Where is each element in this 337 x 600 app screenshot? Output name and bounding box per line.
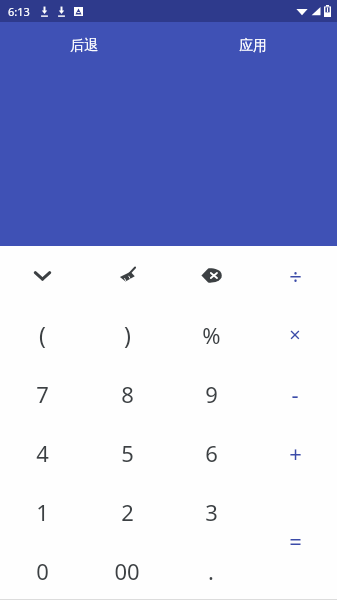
button[interactable]: Clear all bbox=[85, 246, 169, 305]
button[interactable]: ( bbox=[0, 305, 85, 364]
staticText: 9 bbox=[205, 379, 218, 409]
button[interactable]: Collapse keypad bbox=[0, 246, 85, 305]
button[interactable]: × bbox=[253, 305, 337, 364]
button[interactable]: 8 bbox=[85, 364, 169, 423]
button[interactable]: % bbox=[169, 305, 253, 364]
button[interactable]: - bbox=[253, 364, 337, 423]
staticText: . bbox=[208, 556, 214, 586]
button[interactable]: ÷ bbox=[253, 246, 337, 305]
staticText: 应用 bbox=[239, 37, 267, 55]
staticText: 6:13 bbox=[8, 4, 30, 19]
staticText: 1 bbox=[36, 497, 49, 527]
staticText: % bbox=[202, 320, 221, 350]
staticText: 3 bbox=[205, 497, 218, 527]
button[interactable]: + bbox=[253, 423, 337, 482]
button[interactable]: 9 bbox=[169, 364, 253, 423]
button[interactable]: 0 bbox=[0, 541, 85, 600]
staticText: 00 bbox=[114, 556, 140, 586]
staticText: ) bbox=[124, 319, 131, 350]
staticText: 7 bbox=[36, 379, 49, 409]
button[interactable]: 后退 bbox=[0, 28, 168, 64]
button[interactable]: 4 bbox=[0, 423, 85, 482]
staticText: 后退 bbox=[70, 37, 98, 55]
button[interactable]: 7 bbox=[0, 364, 85, 423]
button[interactable]: 应用 bbox=[168, 28, 337, 64]
button[interactable]: ) bbox=[85, 305, 169, 364]
staticText: 4 bbox=[36, 438, 49, 468]
button[interactable]: . bbox=[169, 541, 253, 600]
button[interactable]: 1 bbox=[0, 482, 85, 541]
staticText: ÷ bbox=[289, 261, 302, 291]
button[interactable]: Backspace bbox=[169, 246, 253, 305]
staticText: 6 bbox=[205, 438, 218, 468]
button[interactable]: 2 bbox=[85, 482, 169, 541]
staticText: = bbox=[289, 526, 302, 556]
staticText: × bbox=[289, 321, 301, 348]
button[interactable]: = bbox=[253, 482, 337, 600]
staticText: 2 bbox=[121, 497, 134, 527]
staticText: 8 bbox=[121, 379, 134, 409]
staticText: - bbox=[291, 379, 299, 409]
button[interactable]: 3 bbox=[169, 482, 253, 541]
staticText: ( bbox=[39, 319, 46, 350]
staticText: 5 bbox=[121, 438, 134, 468]
button[interactable]: 6 bbox=[169, 423, 253, 482]
button[interactable]: 5 bbox=[85, 423, 169, 482]
staticText: + bbox=[289, 438, 302, 468]
button[interactable]: 00 bbox=[85, 541, 169, 600]
staticText: 0 bbox=[36, 556, 49, 586]
